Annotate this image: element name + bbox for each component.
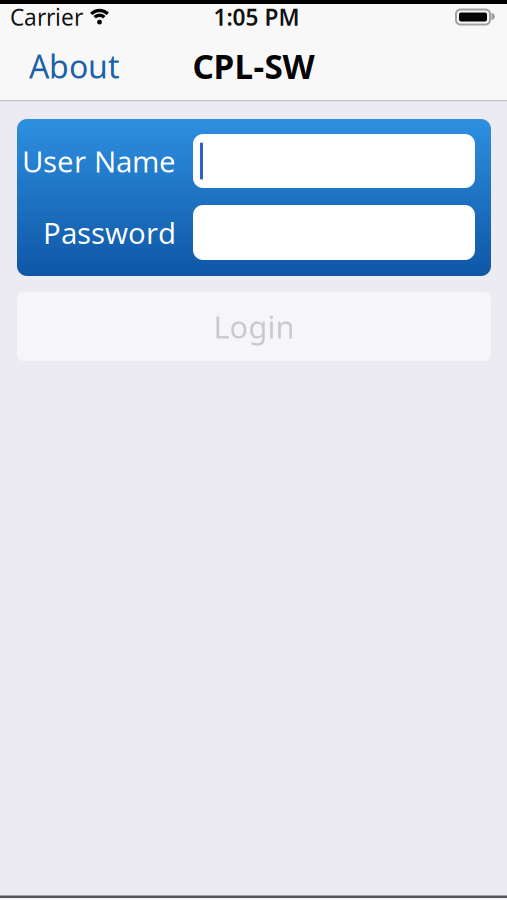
button[interactable]: Login [17, 292, 491, 361]
staticText: User Name [22, 141, 176, 180]
button[interactable]: Password [193, 205, 475, 260]
staticText: Login [213, 306, 294, 347]
staticText: About [29, 45, 120, 87]
staticText: Password [43, 213, 176, 252]
button[interactable]: About [0, 45, 120, 87]
staticText: 1:05 PM [213, 2, 299, 32]
button[interactable]: User Name [193, 134, 475, 188]
staticText: Carrier [10, 2, 83, 32]
staticText: CPL-SW [192, 44, 314, 88]
